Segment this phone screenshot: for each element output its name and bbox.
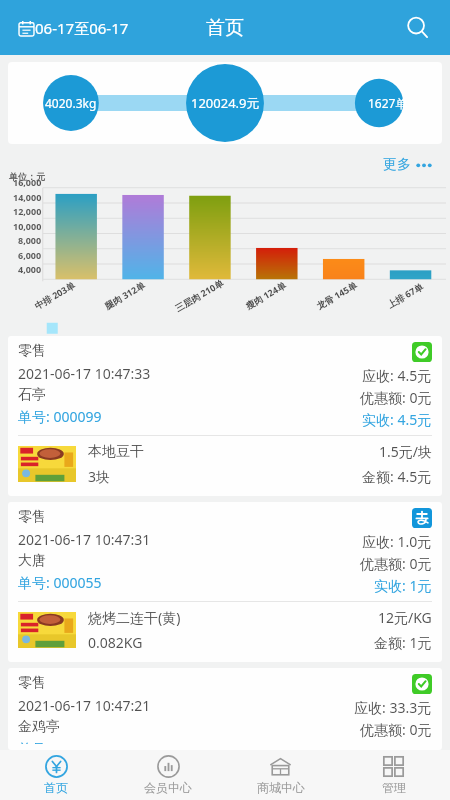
staticText: 实收: 1元 xyxy=(374,576,432,595)
staticText: 零售 xyxy=(18,342,46,360)
staticText: 单位：元 xyxy=(9,171,45,182)
staticText: 金鸡亭 xyxy=(18,718,60,736)
staticText: 中排 203单 xyxy=(32,279,77,311)
button[interactable]: 管理 xyxy=(337,750,450,800)
staticText: 1.5元/块 xyxy=(379,442,432,461)
button[interactable]: 06-17至06-17 xyxy=(14,14,133,42)
staticText: 4,000 xyxy=(18,263,42,274)
staticText: 上排 67单 xyxy=(385,280,425,310)
staticText: 0.082KG xyxy=(88,633,143,652)
staticText: 大唐 xyxy=(18,552,46,570)
staticText: 腿肉 312单 xyxy=(102,279,147,311)
button[interactable]: 首页 xyxy=(0,750,112,800)
staticText: 6,000 xyxy=(18,249,42,260)
staticText: 优惠额: 0元 xyxy=(360,388,432,407)
staticText: 瘦肉 124单 xyxy=(243,279,288,311)
staticText: 12元/KG xyxy=(378,608,432,627)
button[interactable]: 零售 xyxy=(8,336,442,496)
staticText: 首页 xyxy=(44,780,68,795)
staticText: 4020.3kg xyxy=(45,95,97,111)
staticText: 2021-06-17 10:47:21 xyxy=(18,696,151,715)
staticText: 单号: 000055 xyxy=(18,573,102,592)
staticText: 石亭 xyxy=(18,386,46,404)
staticText: 10,000 xyxy=(13,220,42,231)
button[interactable]: 会员中心 xyxy=(112,750,224,800)
staticText: 2021-06-17 10:47:31 xyxy=(18,530,151,549)
staticText: 实收: 4.5元 xyxy=(362,410,432,429)
staticText: 金额: 4.5元 xyxy=(362,467,432,486)
button[interactable]: 零售 xyxy=(8,502,442,662)
staticText: 8,000 xyxy=(18,234,42,245)
staticText: 应收: 33.3元 xyxy=(354,698,432,717)
staticText: 更多 xyxy=(383,156,411,174)
button[interactable]: 更多 xyxy=(380,153,436,177)
button[interactable]: 零售 xyxy=(8,668,442,750)
staticText: 管理 xyxy=(382,780,406,795)
staticText: 06-17至06-17 xyxy=(35,18,129,38)
staticText: 优惠额: 0元 xyxy=(360,720,432,739)
staticText: 零售 xyxy=(18,674,46,692)
button[interactable]: Search xyxy=(398,8,438,48)
staticText: 应收: 4.5元 xyxy=(362,366,432,385)
staticText: 龙骨 145单 xyxy=(314,279,359,311)
staticText: 会员中心 xyxy=(144,780,192,795)
staticText: 首页 xyxy=(206,16,244,40)
staticText: 2021-06-17 10:47:33 xyxy=(18,364,151,383)
staticText: 零售 xyxy=(18,508,46,526)
staticText: 120024.9元 xyxy=(191,94,260,112)
staticText: 12,000 xyxy=(13,205,42,216)
staticText: 本地豆干 xyxy=(88,443,144,461)
staticText: 优惠额: 0元 xyxy=(360,554,432,573)
staticText: 单号: 000099 xyxy=(18,407,102,426)
staticText: 14,000 xyxy=(13,191,42,202)
staticText: 16,000 xyxy=(13,176,42,187)
staticText: 三层肉 210单 xyxy=(173,276,225,314)
staticText: 烧烤二连干(黄) xyxy=(88,608,181,627)
staticText: 商城中心 xyxy=(257,780,305,795)
staticText: 应收: 1.0元 xyxy=(362,532,432,551)
staticText: 金额: 1元 xyxy=(374,633,432,652)
staticText: 1627单 xyxy=(368,95,408,111)
staticText: 单号: 000119 xyxy=(18,739,102,744)
button[interactable]: 4020.3kg xyxy=(8,62,442,144)
button[interactable]: 商城中心 xyxy=(224,750,337,800)
staticText: 3块 xyxy=(88,467,111,486)
